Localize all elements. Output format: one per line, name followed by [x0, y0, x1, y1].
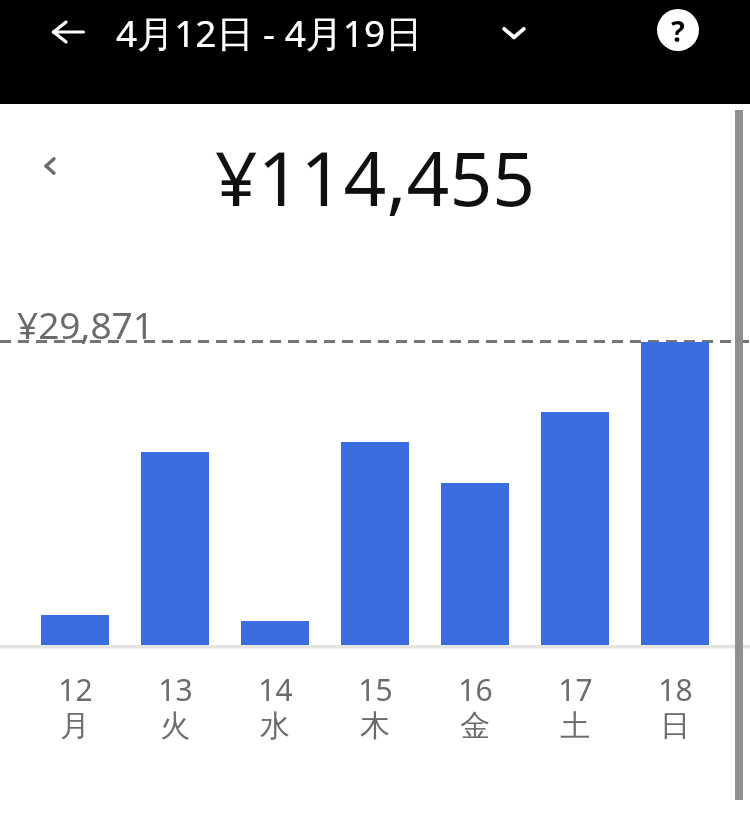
staticText: 12: [58, 669, 93, 710]
staticText: 日: [660, 707, 690, 745]
button[interactable]: 15: [330, 664, 420, 748]
staticText: 木: [360, 707, 390, 745]
button[interactable]: Change date range: [490, 8, 538, 56]
staticText: 14: [258, 669, 293, 710]
staticText: ¥29,871: [17, 299, 154, 349]
button[interactable]: 14: [230, 664, 320, 748]
staticText: 土: [560, 707, 590, 745]
staticText: 13: [158, 669, 193, 710]
staticText: 金: [460, 707, 490, 745]
button[interactable]: Back: [42, 6, 94, 58]
button[interactable]: Previous period: [24, 140, 76, 192]
button[interactable]: Help: [652, 4, 704, 56]
staticText: ¥114,455: [0, 126, 750, 228]
staticText: 16: [458, 669, 493, 710]
staticText: ?: [671, 11, 685, 50]
staticText: 月: [60, 707, 90, 745]
button[interactable]: 12: [30, 664, 120, 748]
staticText: 4月12日 - 4月19日: [116, 7, 423, 58]
staticText: 15: [358, 669, 393, 710]
staticText: 17: [558, 669, 593, 710]
button[interactable]: 13: [130, 664, 220, 748]
staticText: 18: [658, 669, 693, 710]
button[interactable]: 18: [630, 664, 720, 748]
button[interactable]: 16: [430, 664, 520, 748]
button[interactable]: 17: [530, 664, 620, 748]
staticText: 水: [260, 707, 290, 745]
staticText: 火: [160, 707, 190, 745]
